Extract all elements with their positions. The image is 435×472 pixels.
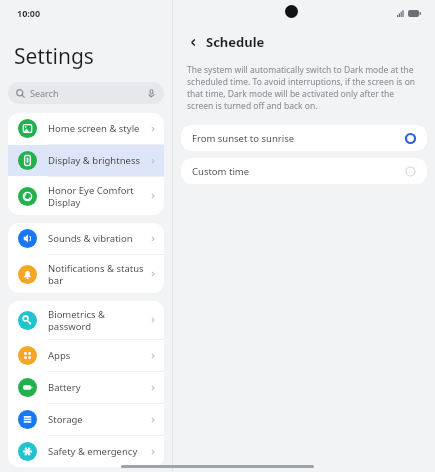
staticText: Home screen & style (48, 122, 149, 135)
other: Back (188, 37, 199, 48)
button[interactable]: Biometrics & password (8, 301, 164, 339)
staticText: Search (30, 87, 59, 99)
staticText: Schedule (206, 33, 265, 51)
staticText: Honor Eye Comfort Display (48, 184, 149, 209)
staticText: The system will automatically switch to … (187, 64, 421, 112)
button[interactable]: Honor Eye Comfort Display (8, 177, 164, 215)
staticText: Storage (48, 413, 149, 426)
staticText: Settings (14, 42, 94, 71)
staticText: 10:00 (17, 7, 41, 19)
button[interactable]: From sunset to sunrise (181, 125, 427, 151)
button[interactable]: Battery (8, 372, 164, 403)
button[interactable]: Storage (8, 404, 164, 435)
button[interactable]: Apps (8, 340, 164, 371)
staticText: Custom time (192, 165, 405, 178)
staticText: From sunset to sunrise (192, 132, 405, 145)
staticText: Notifications & status bar (48, 262, 149, 287)
staticText: Apps (48, 349, 149, 362)
button[interactable]: Back (185, 30, 268, 54)
staticText: Display & brightness (48, 154, 149, 167)
button[interactable]: Home screen & style (8, 113, 164, 144)
button[interactable]: Display & brightness (8, 145, 164, 176)
button[interactable]: Notifications & status bar (8, 255, 164, 293)
staticText: Battery (48, 381, 149, 394)
staticText: Biometrics & password (48, 308, 149, 333)
button[interactable]: Sounds & vibration (8, 223, 164, 254)
button[interactable]: Custom time (181, 158, 427, 184)
staticText: Sounds & vibration (48, 232, 149, 245)
staticText: Safety & emergency (48, 445, 149, 458)
button[interactable]: Safety & emergency (8, 436, 164, 467)
button[interactable]: Search (8, 82, 164, 104)
